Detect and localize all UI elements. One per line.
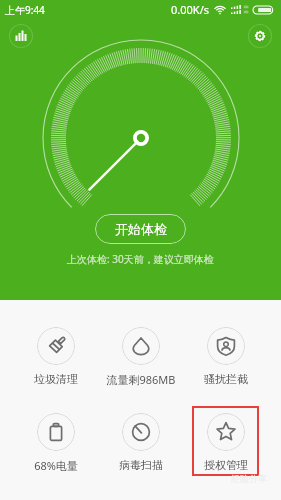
staticText: 流量剩986MB — [106, 372, 176, 387]
staticText: 病毒扫描 — [119, 458, 163, 472]
staticText: 骚扰拦截 — [204, 372, 248, 386]
button[interactable]: 68%电量 — [13, 406, 98, 476]
button[interactable]: 病毒扫描 — [98, 406, 183, 476]
staticText: 经验分享 — [231, 473, 267, 484]
button[interactable]: Traffic statistics — [7, 22, 35, 50]
button[interactable]: Settings — [246, 22, 274, 50]
button[interactable]: 骚扰拦截 — [183, 320, 268, 390]
staticText: 开始体检 — [115, 221, 167, 237]
staticText: 上次体检: 30天前，建议立即体检 — [67, 252, 214, 266]
staticText: 垃圾清理 — [34, 372, 78, 386]
staticText: 授权管理 — [204, 458, 248, 472]
button[interactable]: 垃圾清理 — [13, 320, 98, 390]
button[interactable]: 流量剩986MB — [98, 320, 183, 390]
staticText: 上午9:44 — [5, 3, 45, 17]
button[interactable]: 开始体检 — [95, 214, 186, 244]
staticText: 0.00K/s — [171, 2, 209, 17]
button[interactable]: 授权管理 — [183, 406, 268, 476]
staticText: 68%电量 — [34, 458, 78, 473]
